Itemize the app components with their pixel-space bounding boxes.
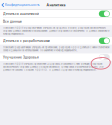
- staticText: Помогайте Apple улучшать приложение «Здо…: [3, 62, 103, 71]
- staticText: Делиться с разработчиками: [3, 39, 50, 43]
- button[interactable]: Все данные: [0, 18, 112, 25]
- staticText: Конфиденциальность: [5, 3, 40, 7]
- button[interactable]: Делиться аналитикой: [0, 10, 112, 18]
- button[interactable]: Конфиденциальность: [0, 0, 42, 10]
- button[interactable]: Улучшение Здоровья: [0, 53, 112, 61]
- staticText: Аналитика: [46, 3, 65, 7]
- staticText: Помогайте разработчикам улучшать их прил…: [3, 46, 109, 52]
- staticText: Улучшение Здоровья: [3, 55, 39, 59]
- staticText: Все данные: [3, 20, 22, 23]
- staticText: Делиться аналитикой: [3, 12, 39, 16]
- button[interactable]: Делиться с разработчиками: [0, 37, 112, 45]
- staticText: Помогайте Apple и разработчикам улучшать…: [3, 26, 109, 35]
